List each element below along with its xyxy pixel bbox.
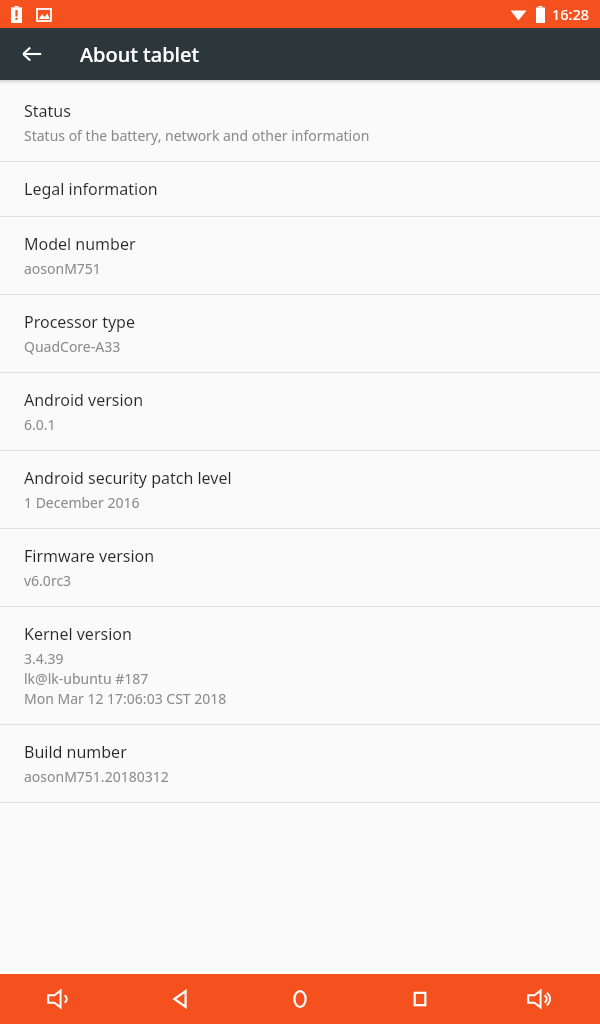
staticText: Model number bbox=[24, 233, 136, 255]
staticText: Kernel version bbox=[24, 623, 132, 645]
button[interactable]: Android security patch level bbox=[0, 451, 600, 528]
button[interactable]: Android version bbox=[0, 373, 600, 450]
button[interactable]: Kernel version bbox=[0, 607, 600, 724]
button[interactable]: Recent apps bbox=[360, 974, 480, 1024]
button[interactable]: Volume down bbox=[0, 974, 120, 1024]
staticText: Android security patch level bbox=[24, 467, 232, 489]
button[interactable]: Home bbox=[240, 974, 360, 1024]
staticText: Firmware version bbox=[24, 545, 155, 567]
staticText: aosonM751 bbox=[24, 259, 101, 278]
button[interactable]: Firmware version bbox=[0, 529, 600, 606]
button[interactable]: Back bbox=[120, 974, 240, 1024]
staticText: v6.0rc3 bbox=[24, 571, 72, 590]
staticText: Processor type bbox=[24, 311, 135, 333]
staticText: Status bbox=[24, 100, 71, 122]
button[interactable]: Build number bbox=[0, 725, 600, 802]
staticText: QuadCore-A33 bbox=[24, 337, 121, 356]
staticText: 1 December 2016 bbox=[24, 493, 140, 512]
staticText: 3.4.39 bbox=[24, 649, 64, 668]
staticText: 6.0.1 bbox=[24, 415, 56, 434]
button[interactable]: Processor type bbox=[0, 295, 600, 372]
button[interactable]: Legal information bbox=[0, 162, 600, 216]
staticText: Android version bbox=[24, 389, 144, 411]
staticText: Build number bbox=[24, 741, 127, 763]
staticText: Mon Mar 12 17:06:03 CST 2018 bbox=[24, 689, 227, 708]
staticText: Legal information bbox=[24, 178, 158, 200]
staticText: aosonM751.20180312 bbox=[24, 767, 169, 786]
button[interactable]: Back bbox=[10, 32, 54, 76]
staticText: Status of the battery, network and other… bbox=[24, 126, 370, 145]
staticText: About tablet bbox=[80, 41, 200, 68]
button[interactable]: Status bbox=[0, 84, 600, 161]
button[interactable]: Volume up bbox=[480, 974, 600, 1024]
staticText: 16:28 bbox=[552, 4, 590, 24]
staticText: lk@lk-ubuntu #187 bbox=[24, 669, 149, 688]
button[interactable]: Model number bbox=[0, 217, 600, 294]
